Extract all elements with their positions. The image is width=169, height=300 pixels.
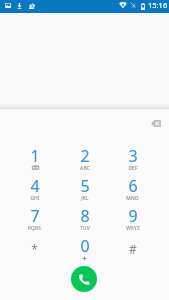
button[interactable]: 9 [108, 201, 157, 231]
staticText: GHI [30, 195, 40, 202]
button[interactable]: 5 [60, 171, 109, 201]
button[interactable]: 0 [60, 231, 109, 261]
staticText: 3 [128, 145, 138, 167]
staticText: WXYZ [126, 225, 140, 232]
staticText: 8 [80, 205, 90, 227]
button[interactable]: * [10, 231, 59, 261]
button[interactable]: 6 [108, 171, 157, 201]
staticText: MNO [126, 195, 139, 202]
staticText: 15:16 [148, 0, 168, 10]
button[interactable]: 7 [10, 201, 59, 231]
staticText: ABC [80, 165, 90, 172]
staticText: # [129, 241, 137, 257]
button[interactable]: Backspace [145, 113, 166, 133]
button[interactable]: Call [71, 266, 97, 292]
staticText: * [31, 241, 38, 257]
staticText: 9 [128, 205, 138, 227]
staticText: DEF [128, 165, 138, 172]
staticText: 6 [128, 175, 138, 197]
button[interactable]: 1 [10, 141, 59, 171]
staticText: JKL [81, 195, 89, 202]
staticText: 2 [80, 145, 90, 167]
staticText: 1 [30, 145, 40, 167]
staticText: 7 [30, 205, 40, 227]
button[interactable]: 4 [10, 171, 59, 201]
staticText: 5 [80, 175, 90, 197]
staticText: 4 [30, 175, 40, 197]
button[interactable]: 3 [108, 141, 157, 171]
staticText: TUV [80, 225, 90, 232]
staticText: 0 [80, 235, 90, 257]
button[interactable]: 8 [60, 201, 109, 231]
button[interactable]: 2 [60, 141, 109, 171]
staticText: PQRS [28, 225, 41, 232]
button[interactable]: # [108, 231, 157, 261]
